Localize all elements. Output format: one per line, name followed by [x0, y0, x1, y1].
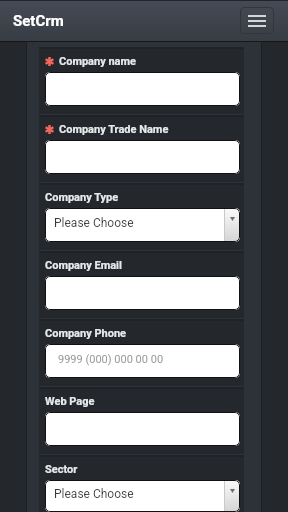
staticText: 9999 (000) 000 00 00 — [58, 353, 164, 366]
button[interactable]: 9999 (000) 000 00 00 — [45, 344, 240, 378]
button[interactable]: Please Choose — [45, 208, 240, 242]
button[interactable] — [45, 140, 240, 174]
button[interactable] — [45, 72, 240, 106]
staticText: Company Phone — [45, 327, 127, 340]
staticText: Company name — [59, 55, 136, 68]
button[interactable]: Open navigation menu — [240, 7, 274, 34]
staticText: Web Page — [45, 395, 95, 408]
staticText: Sector — [45, 463, 78, 476]
staticText: SetCrm — [13, 12, 64, 30]
button[interactable]: Please Choose — [45, 480, 240, 512]
staticText: Company Trade Name — [59, 123, 169, 136]
staticText: Please Choose — [54, 216, 224, 230]
button[interactable] — [45, 412, 240, 446]
staticText: Company Email — [45, 259, 122, 272]
button[interactable] — [45, 276, 240, 310]
staticText: Please Choose — [54, 487, 224, 501]
staticText: Company Type — [45, 191, 119, 204]
